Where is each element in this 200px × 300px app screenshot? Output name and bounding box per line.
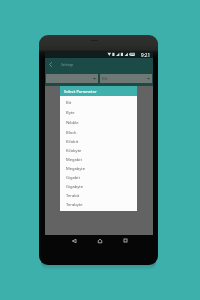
button[interactable]: Bit (100, 74, 152, 83)
staticText: Kilobyte (66, 148, 82, 154)
staticText: 9:21 (141, 52, 151, 58)
staticText: Megabit (66, 157, 82, 163)
button[interactable]: Byte (60, 108, 137, 118)
staticText: Gigabyte (66, 184, 84, 190)
button[interactable]: Gigabit (60, 173, 137, 182)
button[interactable]: Home (94, 236, 105, 245)
staticText: Byte (66, 110, 75, 116)
button[interactable]: Back (68, 236, 79, 245)
staticText: Terabit (66, 193, 80, 199)
button[interactable]: Back (45, 59, 56, 70)
staticText: Bit (66, 100, 72, 106)
staticText: Bit (102, 76, 108, 82)
button[interactable]: Nibble (60, 118, 137, 128)
staticText: Select Parameter (64, 89, 97, 94)
button[interactable]: Bit (60, 98, 137, 108)
staticText: Nibble (66, 120, 79, 126)
staticText: Settings (61, 63, 74, 67)
staticText: Terabyte (66, 202, 83, 208)
staticText: Block (66, 130, 77, 136)
button[interactable]: Gigabyte (60, 182, 137, 191)
button[interactable]: Kilobit (60, 137, 137, 146)
staticText: Gigabit (66, 175, 80, 181)
staticText: Kilobit (66, 139, 79, 145)
button[interactable]: Megabyte (60, 164, 137, 173)
staticText: Megabyte (66, 166, 86, 172)
button[interactable]: Block (60, 128, 137, 137)
button[interactable] (46, 74, 98, 83)
button[interactable]: Megabit (60, 155, 137, 164)
button[interactable]: Terabyte (60, 200, 137, 209)
button[interactable]: Recents (120, 236, 131, 245)
button[interactable]: Terabit (60, 191, 137, 200)
button[interactable]: Kilobyte (60, 146, 137, 155)
